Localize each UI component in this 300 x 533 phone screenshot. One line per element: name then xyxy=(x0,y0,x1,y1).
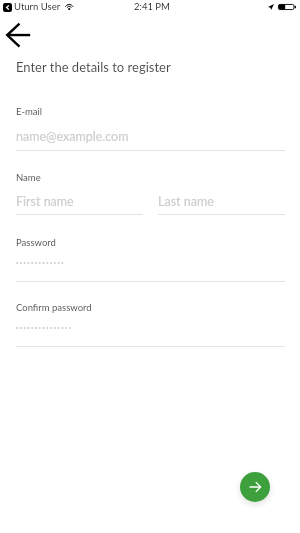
button[interactable]: Back xyxy=(0,19,37,51)
button[interactable]: Next xyxy=(240,472,270,502)
staticText: Confirm password xyxy=(16,302,92,313)
staticText: Enter the details to register xyxy=(16,59,171,75)
staticText: 2:41 PM xyxy=(134,1,170,12)
staticText: Last name xyxy=(158,194,214,209)
staticText: Uturn User xyxy=(14,1,61,12)
staticText: name@example.com xyxy=(16,129,129,144)
staticText: Password xyxy=(16,237,56,248)
staticText: E-mail xyxy=(16,106,43,117)
staticText: First name xyxy=(16,194,74,209)
staticText: Name xyxy=(16,172,41,183)
